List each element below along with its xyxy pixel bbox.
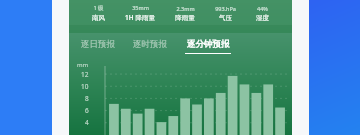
staticText: 4 [85, 118, 89, 127]
staticText: 气压 [219, 14, 232, 22]
staticText: mm [77, 61, 89, 69]
staticText: 10 [81, 82, 89, 91]
button[interactable]: 35mm [125, 4, 155, 22]
staticText: 993.hPa [215, 5, 236, 12]
button[interactable]: 993.hPa [215, 5, 236, 22]
staticText: 6 [85, 106, 89, 115]
button[interactable]: 逐日预报 [78, 37, 118, 56]
staticText: 逐日预报 [81, 39, 115, 50]
staticText: 逐分钟预报 [187, 39, 230, 50]
staticText: 南风 [92, 14, 105, 22]
button[interactable]: 1 级 [92, 4, 105, 22]
button[interactable]: 2.3mm [175, 5, 195, 22]
button[interactable]: 44% [256, 5, 269, 22]
staticText: 1H 降雨量 [125, 13, 155, 22]
button[interactable]: 1 级 [69, 0, 292, 25]
button[interactable]: 逐分钟预报 [182, 37, 234, 56]
staticText: 1 级 [93, 4, 104, 12]
staticText: 12 [81, 70, 89, 79]
staticText: 35mm [132, 4, 149, 11]
staticText: 44% [257, 5, 268, 12]
button[interactable]: 逐时预报 [130, 37, 170, 56]
staticText: 2.3mm [176, 5, 195, 12]
staticText: 8 [85, 94, 89, 103]
staticText: 逐时预报 [133, 39, 167, 50]
staticText: 湿度 [256, 14, 269, 22]
staticText: 降雨量 [175, 14, 195, 22]
